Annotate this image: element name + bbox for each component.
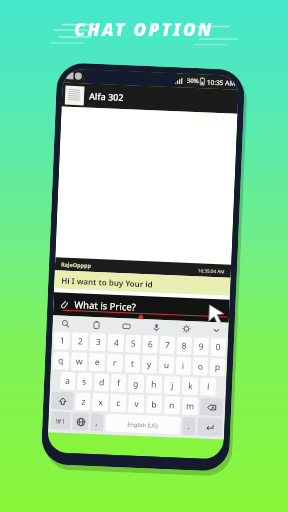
- staticText: 10:35:04 AM: [198, 267, 225, 274]
- staticText: 7: [164, 339, 170, 351]
- staticText: 2: [78, 335, 83, 347]
- button[interactable]: 0: [210, 338, 226, 356]
- staticText: v: [134, 398, 139, 410]
- button[interactable]: x: [92, 393, 109, 412]
- button[interactable]: l: [200, 377, 216, 396]
- button[interactable]: p: [209, 358, 225, 376]
- button[interactable]: v: [128, 394, 145, 413]
- staticText: k: [188, 380, 193, 392]
- staticText: l: [207, 381, 210, 393]
- button[interactable]: More options: [209, 323, 223, 336]
- staticText: English (US): [127, 420, 159, 429]
- button[interactable]: 7: [159, 336, 175, 354]
- button[interactable]: d: [94, 373, 109, 392]
- button[interactable]: Change language: [72, 412, 89, 431]
- button[interactable]: i: [175, 356, 191, 375]
- button[interactable]: r: [107, 354, 123, 372]
- staticText: w: [76, 355, 83, 368]
- button[interactable]: b: [146, 395, 163, 414]
- staticText: 9: [198, 340, 204, 353]
- button[interactable]: k: [182, 377, 198, 395]
- staticText: RajeOpppp: [61, 261, 92, 269]
- button[interactable]: z: [75, 392, 91, 411]
- staticText: t: [131, 358, 135, 370]
- staticText: 4: [113, 337, 119, 349]
- button[interactable]: j: [164, 376, 180, 395]
- staticText: q: [58, 354, 64, 367]
- staticText: b: [151, 398, 157, 411]
- staticText: n: [169, 399, 175, 411]
- button[interactable]: o: [192, 357, 208, 376]
- staticText: !#1: [55, 416, 66, 426]
- button[interactable]: 2: [71, 332, 88, 351]
- staticText: g: [133, 378, 139, 390]
- staticText: 8: [181, 340, 187, 352]
- staticText: s: [82, 376, 87, 388]
- staticText: 1: [60, 335, 65, 347]
- button[interactable]: 3: [89, 333, 106, 351]
- staticText: y: [147, 358, 152, 370]
- button[interactable]: Search: [58, 316, 72, 330]
- button[interactable]: Enter: [197, 417, 223, 436]
- button[interactable]: RajeOpppp: [54, 257, 231, 296]
- staticText: 3: [96, 336, 101, 348]
- button[interactable]: y: [142, 355, 157, 374]
- staticText: r: [113, 357, 117, 369]
- button[interactable]: Clipboard: [89, 318, 103, 331]
- button[interactable]: a: [60, 372, 75, 390]
- button[interactable]: 8: [176, 336, 192, 355]
- staticText: 6: [147, 338, 153, 350]
- staticText: x: [98, 396, 103, 408]
- button[interactable]: GIF: [119, 319, 133, 333]
- button[interactable]: ,: [90, 413, 104, 431]
- button[interactable]: !#1: [50, 411, 71, 430]
- button[interactable]: t: [125, 354, 140, 373]
- button[interactable]: m: [182, 397, 198, 415]
- staticText: z: [81, 395, 86, 408]
- button[interactable]: s: [77, 372, 92, 391]
- staticText: What is Price?: [74, 298, 137, 314]
- button[interactable]: Settings: [179, 322, 193, 335]
- button[interactable]: English (US): [105, 414, 181, 435]
- staticText: o: [198, 360, 204, 373]
- button[interactable]: e: [89, 353, 105, 371]
- staticText: i: [182, 360, 185, 372]
- staticText: f: [117, 377, 120, 389]
- button[interactable]: Backspace: [200, 397, 223, 416]
- staticText: Hi I want to buy Your id: [61, 275, 153, 289]
- staticText: 0: [215, 341, 221, 353]
- button[interactable]: 4: [107, 334, 124, 352]
- button[interactable]: w: [71, 352, 87, 371]
- button[interactable]: 5: [125, 334, 141, 353]
- button[interactable]: h: [146, 375, 162, 394]
- staticText: Alfa 302: [89, 90, 124, 103]
- button[interactable]: n: [164, 396, 181, 415]
- staticText: m: [186, 400, 194, 412]
- staticText: 5: [130, 338, 136, 350]
- button[interactable]: q: [53, 351, 69, 370]
- staticText: ,: [95, 416, 99, 428]
- button[interactable]: 1: [53, 331, 70, 350]
- staticText: d: [99, 376, 105, 388]
- staticText: CHAT OPTION: [74, 18, 214, 41]
- button[interactable]: c: [110, 394, 127, 412]
- button[interactable]: .: [182, 417, 196, 435]
- button[interactable]: What is Price?: [74, 293, 230, 323]
- staticText: a: [65, 375, 70, 387]
- staticText: h: [151, 378, 157, 391]
- button[interactable]: g: [128, 374, 144, 393]
- staticText: p: [215, 361, 221, 373]
- staticText: j: [171, 379, 174, 391]
- button[interactable]: Shift: [51, 391, 74, 410]
- button[interactable]: Voice input: [149, 320, 163, 334]
- staticText: u: [164, 359, 170, 371]
- button[interactable]: 9: [193, 337, 209, 356]
- button[interactable]: f: [111, 374, 126, 392]
- button[interactable]: Attach file: [56, 296, 72, 312]
- staticText: e: [95, 356, 100, 368]
- button[interactable]: u: [158, 356, 174, 374]
- button[interactable]: 6: [142, 335, 158, 354]
- staticText: c: [116, 397, 121, 409]
- staticText: .: [187, 420, 191, 432]
- button[interactable]: Alfa 302: [62, 82, 239, 114]
